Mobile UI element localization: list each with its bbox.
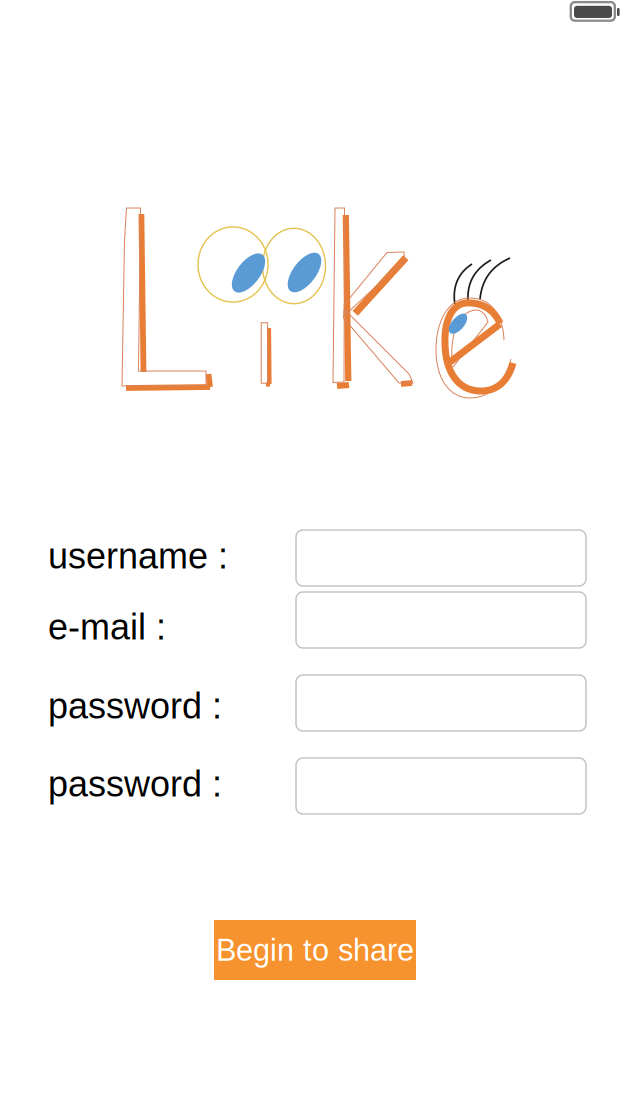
button[interactable]: confirm password (296, 758, 586, 814)
button[interactable]: Begin to share (214, 920, 416, 980)
staticText: Begin to share (216, 933, 414, 967)
button[interactable]: e-mail (296, 592, 586, 648)
staticText: username : (48, 536, 228, 576)
staticText: e-mail : (48, 607, 166, 647)
button[interactable]: username (296, 530, 586, 586)
staticText: password : (48, 764, 222, 804)
staticText: password : (48, 686, 222, 726)
button[interactable]: password (296, 675, 586, 731)
